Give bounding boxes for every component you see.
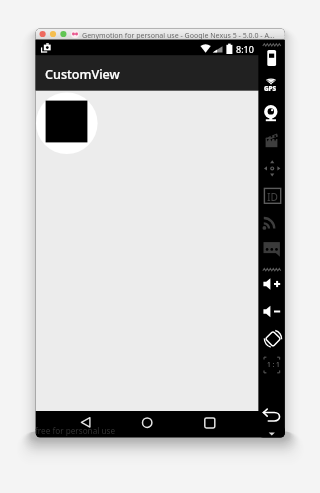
staticText: GPS bbox=[264, 84, 277, 92]
staticText: 8:10 bbox=[236, 43, 254, 55]
staticText: 1 : 1 bbox=[267, 360, 280, 369]
staticText: ID bbox=[267, 190, 279, 204]
staticText: free for personal use bbox=[35, 425, 116, 436]
staticText: CustomView bbox=[45, 66, 120, 83]
button[interactable]: CustomView bbox=[36, 55, 259, 90]
staticText: Genymotion for personal use - Google Nex… bbox=[82, 30, 275, 40]
